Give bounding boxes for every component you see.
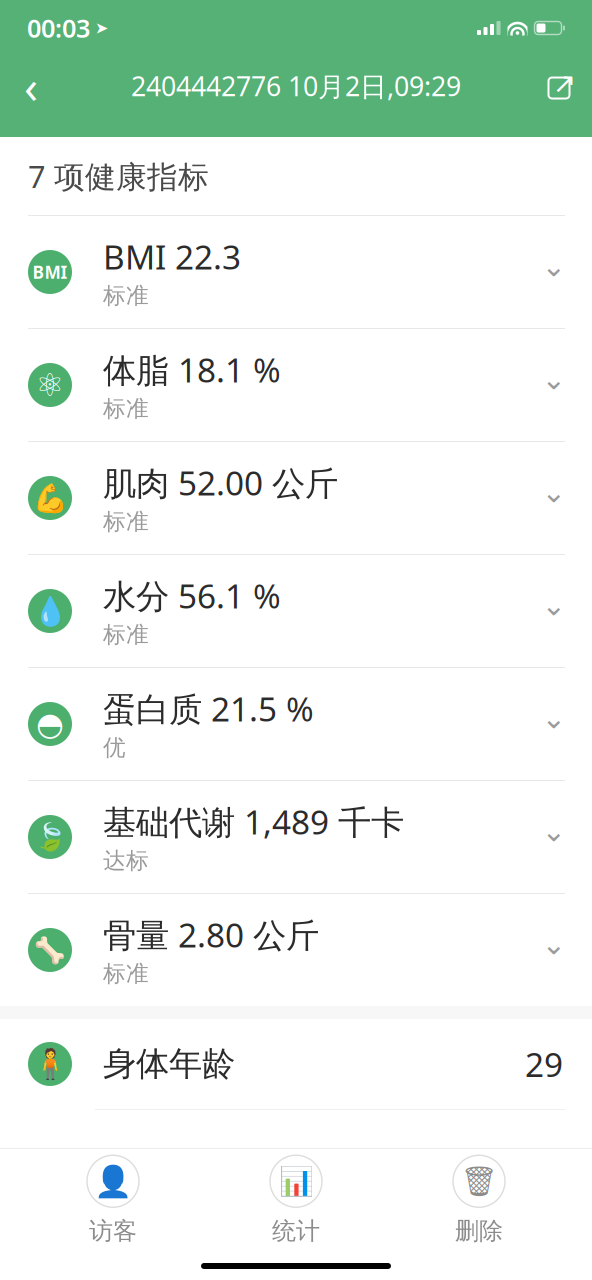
staticText: 身体年龄 [103, 1043, 235, 1084]
staticText: 🦴 [34, 935, 66, 964]
staticText: ⌄ [541, 475, 566, 509]
button[interactable]: 🧍 [0, 1019, 592, 1109]
staticText: ⌄ [541, 927, 566, 961]
staticText: 统计 [272, 1216, 320, 1246]
button[interactable]: 📊 [226, 1155, 366, 1246]
button[interactable]: 💪 [0, 442, 592, 554]
staticText: 基础代谢 1,489 千卡 [103, 799, 404, 844]
staticText: ⌄ [541, 588, 566, 622]
staticText: 🗑 [460, 1164, 497, 1198]
staticText: 标准 [103, 282, 149, 309]
staticText: ◓ [36, 706, 64, 742]
staticText: ⚛︎ [35, 367, 64, 403]
staticText: 骨量 2.80 公斤 [103, 912, 319, 957]
staticText: 00:03 [27, 11, 90, 45]
staticText: BMI 22.3 [103, 234, 241, 279]
staticText: 7 项健康指标 [28, 156, 209, 196]
staticText: 访客 [89, 1216, 137, 1246]
staticText: 优 [103, 734, 126, 761]
staticText: 水分 56.1 % [103, 573, 281, 618]
staticText: 删除 [455, 1216, 503, 1246]
staticText: 标准 [103, 960, 149, 987]
staticText: 💪 [32, 482, 67, 514]
button[interactable]: 💧 [0, 555, 592, 667]
staticText: ‹ [24, 56, 38, 116]
staticText: BMI [32, 260, 67, 283]
staticText: ⌄ [541, 701, 566, 735]
staticText: 标准 [103, 395, 149, 422]
staticText: 肌肉 52.00 公斤 [103, 460, 338, 505]
staticText: 💧 [32, 595, 67, 627]
button[interactable]: Share [530, 56, 592, 116]
button[interactable]: 🗑 [409, 1155, 549, 1246]
button[interactable]: ⚛︎ [0, 329, 592, 441]
button[interactable]: BMI [0, 216, 592, 328]
staticText: 🍃 [33, 822, 66, 852]
staticText: 29 [525, 1042, 563, 1086]
staticText: 📊 [278, 1165, 313, 1197]
staticText: 体脂 18.1 % [103, 347, 281, 392]
staticText: ⌄ [541, 249, 566, 283]
staticText: 标准 [103, 508, 149, 535]
staticText: ↗ [552, 67, 575, 99]
staticText: 标准 [103, 621, 149, 648]
staticText: 达标 [103, 847, 149, 874]
button[interactable]: Back [0, 56, 62, 116]
staticText: 2404442776 10月2日,09:29 [131, 68, 461, 104]
staticText: ➤ [95, 19, 108, 37]
staticText: ⌄ [541, 362, 566, 396]
button[interactable]: 👤 [43, 1155, 183, 1246]
button[interactable]: ◓ [0, 668, 592, 780]
button[interactable]: 🦴 [0, 894, 592, 1006]
button[interactable]: 🍃 [0, 781, 592, 893]
staticText: ⌄ [541, 814, 566, 848]
staticText: 🧍 [31, 1047, 68, 1081]
staticText: 蛋白质 21.5 % [103, 686, 314, 731]
staticText: 👤 [94, 1164, 132, 1199]
